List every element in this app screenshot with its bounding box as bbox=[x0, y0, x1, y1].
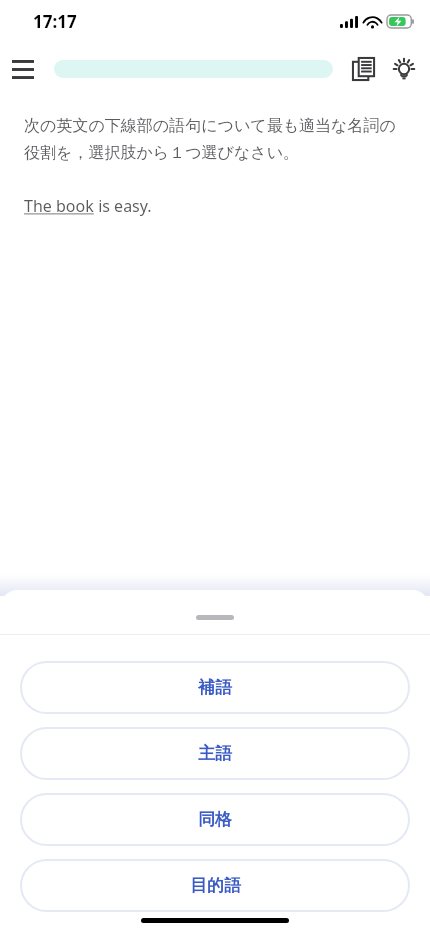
staticText: The book bbox=[24, 195, 94, 217]
button[interactable]: 目的語 bbox=[22, 861, 408, 910]
button[interactable]: 主語 bbox=[22, 729, 408, 778]
staticText: 主語 bbox=[198, 743, 232, 764]
button[interactable]: Copy bbox=[346, 51, 382, 87]
button[interactable]: 同格 bbox=[22, 795, 408, 844]
button[interactable]: Search bbox=[54, 60, 333, 78]
staticText: 補語 bbox=[198, 677, 232, 698]
staticText: is easy. bbox=[94, 195, 152, 217]
staticText: 目的語 bbox=[190, 875, 241, 896]
staticText: 17:17 bbox=[33, 10, 77, 33]
button[interactable]: Menu bbox=[6, 52, 40, 86]
button[interactable]: Hint bbox=[386, 51, 422, 87]
staticText: 同格 bbox=[198, 809, 232, 830]
button[interactable]: 補語 bbox=[22, 663, 408, 712]
staticText: 次の英文の下線部の語句について最も適当な名詞の役割を，選択肢から１つ選びなさい。 bbox=[24, 116, 406, 163]
